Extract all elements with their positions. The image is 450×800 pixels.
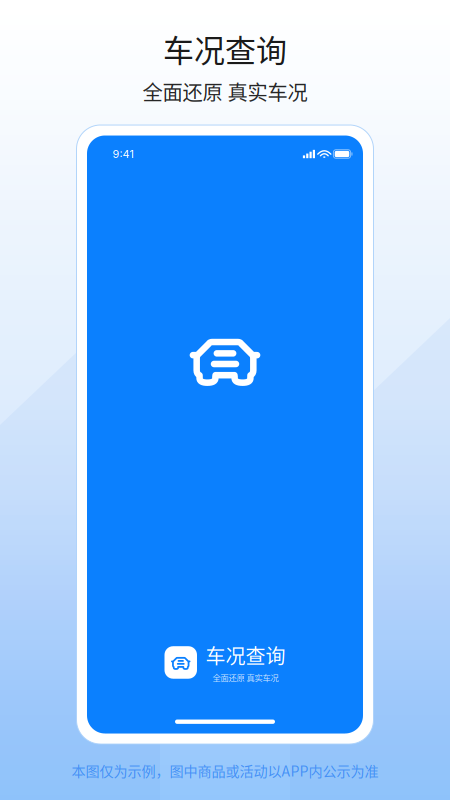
staticText: 全面还原 真实车况 bbox=[212, 671, 278, 683]
staticText: 本图仅为示例，图中商品或活动以APP内公示为准 bbox=[71, 760, 378, 780]
staticText: 9:41 bbox=[112, 147, 133, 161]
staticText: 车况查询 bbox=[205, 640, 285, 669]
staticText: 车况查询 bbox=[163, 26, 287, 71]
staticText: 全面还原 真实车况 bbox=[142, 77, 307, 106]
